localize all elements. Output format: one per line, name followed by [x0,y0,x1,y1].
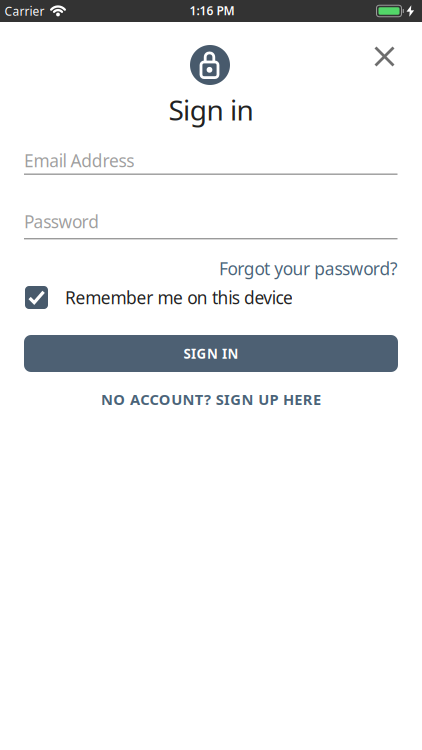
button[interactable]: Remember me on this device [25,286,293,309]
staticText: Sign in [168,91,254,128]
button[interactable]: SIGN IN [24,335,398,372]
staticText: Carrier [4,3,44,19]
staticText: Email Address [24,149,134,172]
staticText: Forgot your password? [219,257,398,280]
staticText: 1:16 PM [189,2,234,18]
staticText: NO ACCOUNT? SIGN UP HERE [101,389,321,409]
button[interactable]: Close [375,47,393,65]
staticText: SIGN IN [183,345,238,362]
button[interactable]: NO ACCOUNT? SIGN UP HERE [101,389,321,409]
staticText: Password [24,210,99,233]
button[interactable]: Forgot your password? [219,257,398,280]
staticText: Remember me on this device [65,286,293,309]
